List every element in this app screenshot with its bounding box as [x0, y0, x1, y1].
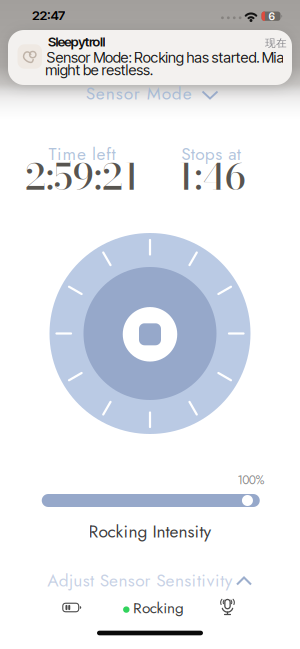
staticText: 现在 [265, 37, 287, 50]
staticText: Time left [48, 141, 115, 166]
staticText: Sensor Mode [86, 81, 192, 106]
staticText: 6 [268, 10, 275, 23]
button[interactable]: Device battery [62, 602, 82, 613]
staticText: might be restless. [45, 61, 153, 79]
button[interactable]: Rocking intensity slider [42, 494, 260, 507]
button[interactable]: Sensor Mode [88, 84, 218, 105]
staticText: Sleepytroll [48, 34, 105, 50]
button[interactable]: Stop rocking [123, 307, 177, 362]
button[interactable]: Adjust Sensor Sensitivity [46, 571, 252, 591]
staticText: Sensor Mode: Rocking has started. Mia [47, 48, 284, 66]
staticText: Adjust Sensor Sensitivity [47, 568, 233, 593]
staticText: 2:59:21 [25, 148, 140, 204]
staticText: 22:47 [32, 7, 65, 23]
staticText: Rocking Intensity [88, 519, 211, 544]
staticText: 1:46 [177, 148, 245, 204]
button[interactable]: Sleepytroll notification [8, 30, 292, 85]
staticText: Stops at [181, 141, 241, 166]
button[interactable]: Sound detection [218, 597, 236, 615]
staticText: Rocking [133, 597, 184, 619]
staticText: 100% [237, 471, 264, 489]
